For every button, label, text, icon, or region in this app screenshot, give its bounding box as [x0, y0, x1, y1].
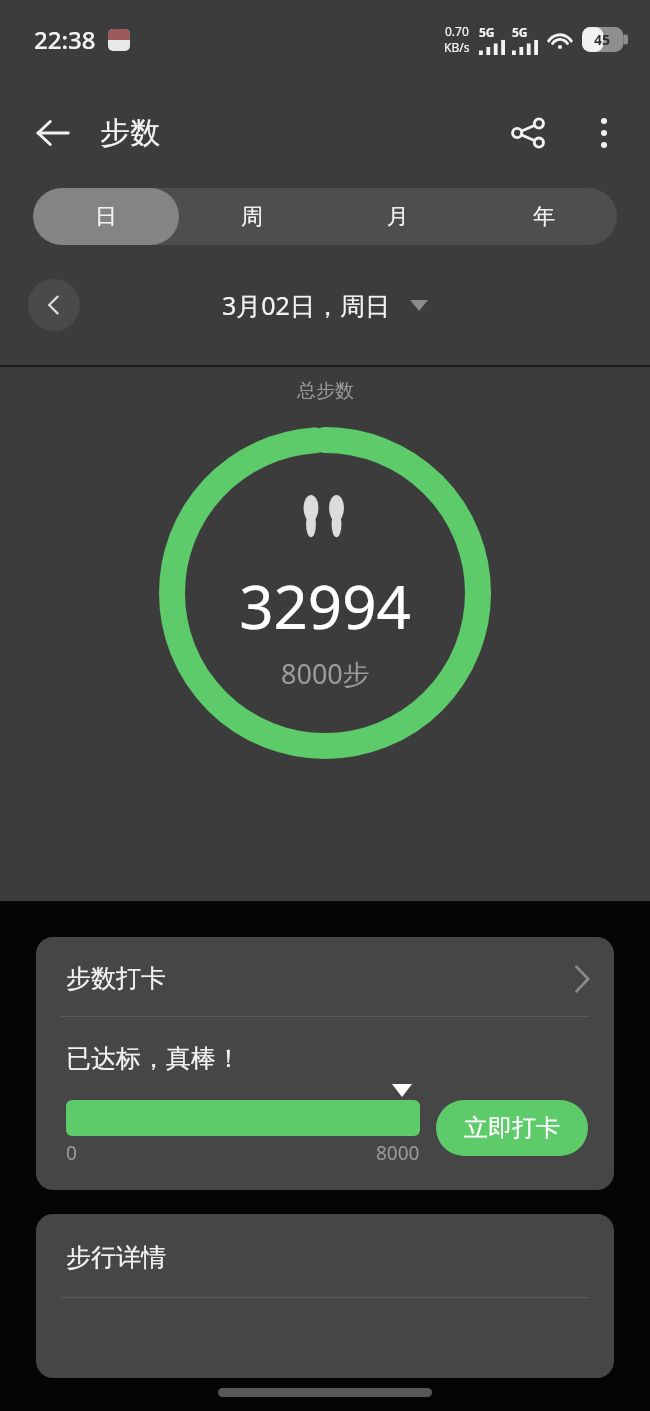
button[interactable]: 月 — [325, 188, 471, 245]
staticText: 5G — [479, 24, 495, 40]
staticText: 周 — [241, 203, 263, 231]
button[interactable]: Back — [22, 102, 84, 164]
button[interactable]: 3月02日，周日 — [222, 288, 428, 322]
staticText: 年 — [533, 203, 555, 231]
staticText: 0 — [66, 1140, 77, 1166]
staticText: 5G — [512, 24, 528, 40]
staticText: 45 — [594, 30, 611, 49]
staticText: 步数打卡 — [66, 963, 166, 994]
button[interactable]: 立即打卡 — [436, 1100, 588, 1156]
button[interactable]: 日 — [33, 188, 179, 245]
staticText: 8000 — [376, 1140, 420, 1166]
staticText: 立即打卡 — [464, 1113, 560, 1143]
staticText: 总步数 — [297, 379, 354, 403]
staticText: 步数 — [100, 114, 160, 152]
staticText: 8000步 — [281, 655, 370, 692]
staticText: 32994 — [239, 565, 411, 647]
staticText: 0.70 — [445, 23, 469, 39]
staticText: 月 — [387, 203, 409, 231]
button[interactable]: 周 — [179, 188, 325, 245]
button[interactable]: More options — [576, 105, 632, 161]
staticText: KB/s — [444, 39, 470, 55]
staticText: 步行详情 — [66, 1242, 166, 1273]
staticText: 日 — [95, 203, 117, 231]
button[interactable]: 年 — [471, 188, 617, 245]
staticText: 已达标，真棒！ — [66, 1043, 241, 1074]
staticText: 3月02日，周日 — [222, 288, 390, 322]
button[interactable]: Previous day — [28, 279, 80, 331]
button[interactable]: Share — [498, 103, 558, 163]
staticText: 22:38 — [34, 23, 96, 56]
button[interactable]: 步数打卡 — [36, 937, 614, 1016]
button[interactable]: 步行详情 — [36, 1214, 614, 1378]
